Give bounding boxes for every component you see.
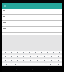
button[interactable] xyxy=(55,55,62,57)
button[interactable] xyxy=(2,63,11,65)
button[interactable] xyxy=(8,55,14,57)
button[interactable] xyxy=(20,51,26,53)
button[interactable]: Navigation xyxy=(46,67,50,71)
button[interactable] xyxy=(56,51,62,53)
button[interactable] xyxy=(27,55,34,57)
button[interactable] xyxy=(46,63,54,65)
button[interactable] xyxy=(54,63,62,65)
button[interactable] xyxy=(34,59,41,61)
button[interactable] xyxy=(20,59,27,61)
button[interactable] xyxy=(48,55,55,57)
button[interactable] xyxy=(2,27,62,33)
button[interactable] xyxy=(2,59,8,61)
button[interactable] xyxy=(20,55,27,57)
button[interactable] xyxy=(34,55,41,57)
button[interactable]: Navigate up xyxy=(3,4,7,8)
button[interactable] xyxy=(8,59,14,61)
button[interactable] xyxy=(8,51,14,53)
button[interactable] xyxy=(14,55,20,57)
button[interactable] xyxy=(38,51,44,53)
button[interactable] xyxy=(50,51,56,53)
button[interactable] xyxy=(14,59,20,61)
button[interactable] xyxy=(11,63,19,65)
button[interactable]: Navigation xyxy=(30,67,34,71)
button[interactable] xyxy=(2,55,8,57)
button[interactable] xyxy=(27,59,34,61)
button[interactable] xyxy=(2,21,62,27)
button[interactable] xyxy=(14,51,20,53)
button[interactable] xyxy=(32,51,38,53)
button[interactable] xyxy=(2,51,8,53)
button[interactable] xyxy=(44,51,50,53)
button[interactable] xyxy=(2,15,62,21)
button[interactable] xyxy=(48,59,55,61)
button[interactable] xyxy=(26,51,32,53)
button[interactable] xyxy=(2,9,62,15)
button[interactable]: Navigation xyxy=(14,67,18,71)
button[interactable] xyxy=(41,55,48,57)
button[interactable] xyxy=(41,59,48,61)
button[interactable] xyxy=(55,59,62,61)
